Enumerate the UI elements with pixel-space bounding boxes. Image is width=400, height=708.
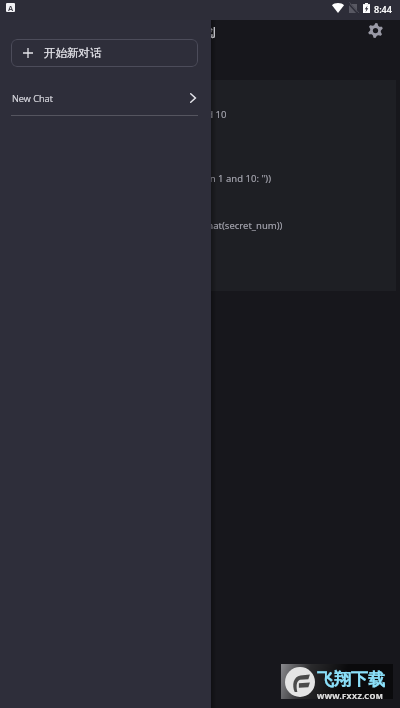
staticText: New Chat <box>12 92 53 105</box>
staticText: 飞翔下载 <box>317 669 385 690</box>
staticText: 8:44 <box>374 3 392 15</box>
staticText: A <box>8 3 14 12</box>
button[interactable]: New Chat <box>12 86 196 110</box>
button[interactable]: Settings <box>364 19 387 42</box>
staticText: # Secret number between 1 and 10 <box>70 108 227 121</box>
staticText: guess = int(input("Guess a number betwee… <box>10 172 271 185</box>
staticText: 开始新对话 <box>44 46 102 60</box>
button[interactable]: 开始新对话 <box>11 39 198 67</box>
staticText: 用Python写一个猜数字游戏J <box>65 23 217 39</box>
staticText: print("Correct! {}".format(secret_num)) <box>92 219 283 232</box>
staticText: WWW.FXXZ.COM <box>317 691 384 701</box>
